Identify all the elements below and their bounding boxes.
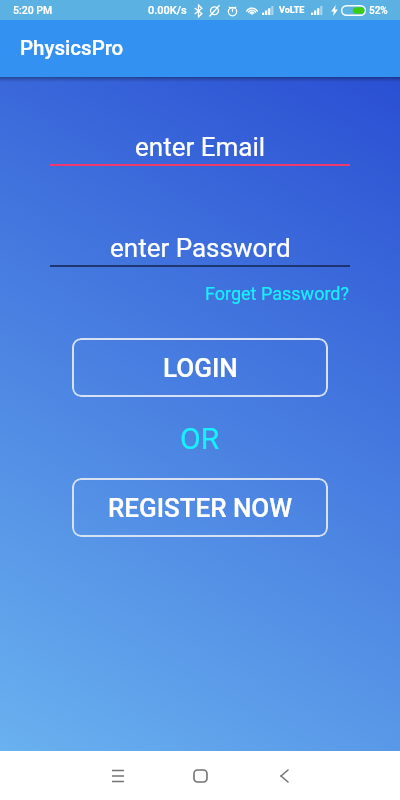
staticText: 5:20 PM — [13, 4, 53, 16]
staticText: VoLTE — [279, 5, 305, 16]
button[interactable]: Recent apps — [97, 755, 138, 796]
staticText: PhysicsPro — [20, 36, 124, 60]
button[interactable]: REGISTER NOW — [72, 478, 328, 537]
staticText: OR — [180, 421, 220, 455]
staticText: 0.00K/s — [148, 4, 187, 17]
button[interactable]: LOGIN — [72, 338, 328, 397]
staticText: REGISTER NOW — [108, 493, 293, 523]
button[interactable]: Home — [180, 755, 221, 796]
staticText: LOGIN — [163, 353, 238, 383]
staticText: 52% — [369, 5, 388, 17]
staticText: enter Password — [110, 233, 291, 263]
staticText: enter Email — [135, 132, 266, 162]
button[interactable]: Back — [264, 755, 305, 796]
staticText: Forget Password? — [205, 283, 349, 304]
button[interactable]: Forget Password? — [203, 281, 351, 306]
